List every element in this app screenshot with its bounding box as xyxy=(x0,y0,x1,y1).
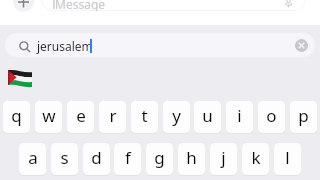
button[interactable]: k xyxy=(242,143,269,175)
button[interactable]: r xyxy=(99,101,126,133)
staticText: a xyxy=(28,146,38,169)
staticText: s xyxy=(60,146,69,169)
button[interactable]: l xyxy=(274,143,301,175)
staticText: f xyxy=(125,146,131,169)
staticText: d xyxy=(91,146,102,169)
button[interactable]: p xyxy=(290,101,317,133)
button[interactable]: t xyxy=(131,101,158,133)
staticText: o xyxy=(266,104,277,127)
staticText: q xyxy=(11,104,22,127)
button[interactable]: Flag of Palestine emoji xyxy=(8,69,32,89)
button[interactable]: jerusalem xyxy=(5,33,315,57)
staticText: l xyxy=(285,146,290,169)
button[interactable]: g xyxy=(146,143,173,175)
staticText: p xyxy=(298,104,309,127)
button[interactable]: s xyxy=(51,143,78,175)
staticText: u xyxy=(202,104,213,127)
staticText: w xyxy=(42,104,56,127)
button[interactable]: w xyxy=(35,101,62,133)
button[interactable]: Voice message xyxy=(283,0,294,8)
button[interactable]: q xyxy=(3,101,30,133)
button[interactable]: j xyxy=(210,143,237,175)
button[interactable]: Clear search xyxy=(295,39,308,52)
staticText: y xyxy=(172,104,181,127)
staticText: g xyxy=(154,146,165,169)
staticText: i xyxy=(237,104,242,127)
staticText: e xyxy=(76,104,86,127)
staticText: Message xyxy=(55,0,106,11)
button[interactable]: Message xyxy=(41,0,306,11)
button[interactable]: i xyxy=(226,101,253,133)
button[interactable]: u xyxy=(194,101,221,133)
button[interactable]: f xyxy=(114,143,141,175)
button[interactable]: Add attachment xyxy=(13,0,34,12)
button[interactable]: a xyxy=(19,143,46,175)
staticText: h xyxy=(186,146,197,169)
staticText: r xyxy=(109,104,117,127)
staticText: t xyxy=(141,104,148,127)
button[interactable]: y xyxy=(163,101,190,133)
button[interactable]: d xyxy=(83,143,110,175)
button[interactable]: o xyxy=(258,101,285,133)
button[interactable]: h xyxy=(178,143,205,175)
staticText: k xyxy=(251,146,261,169)
staticText: j xyxy=(221,146,226,169)
staticText: jerusalem xyxy=(37,38,93,54)
button[interactable]: e xyxy=(67,101,94,133)
